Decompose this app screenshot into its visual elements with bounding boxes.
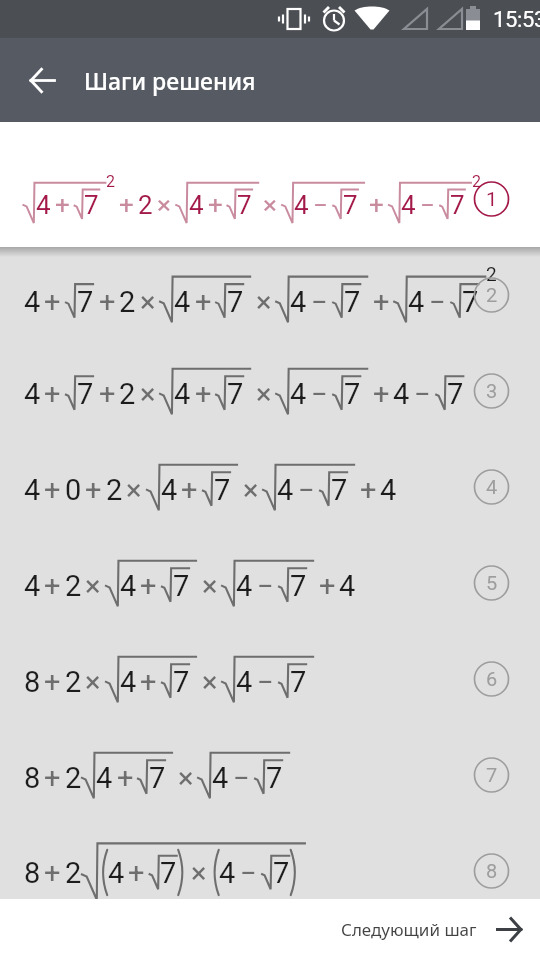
button[interactable] [0,343,540,439]
button[interactable] [0,439,540,535]
button[interactable]: Следующий шаг [323,905,540,954]
button[interactable] [0,122,540,247]
button[interactable] [0,727,540,823]
staticText: Шаги решения [84,65,256,96]
button[interactable]: Back [0,38,84,122]
button[interactable] [0,631,540,727]
staticText: Следующий шаг [341,918,477,941]
button[interactable] [0,535,540,631]
button[interactable] [0,247,540,343]
button[interactable] [0,823,540,919]
